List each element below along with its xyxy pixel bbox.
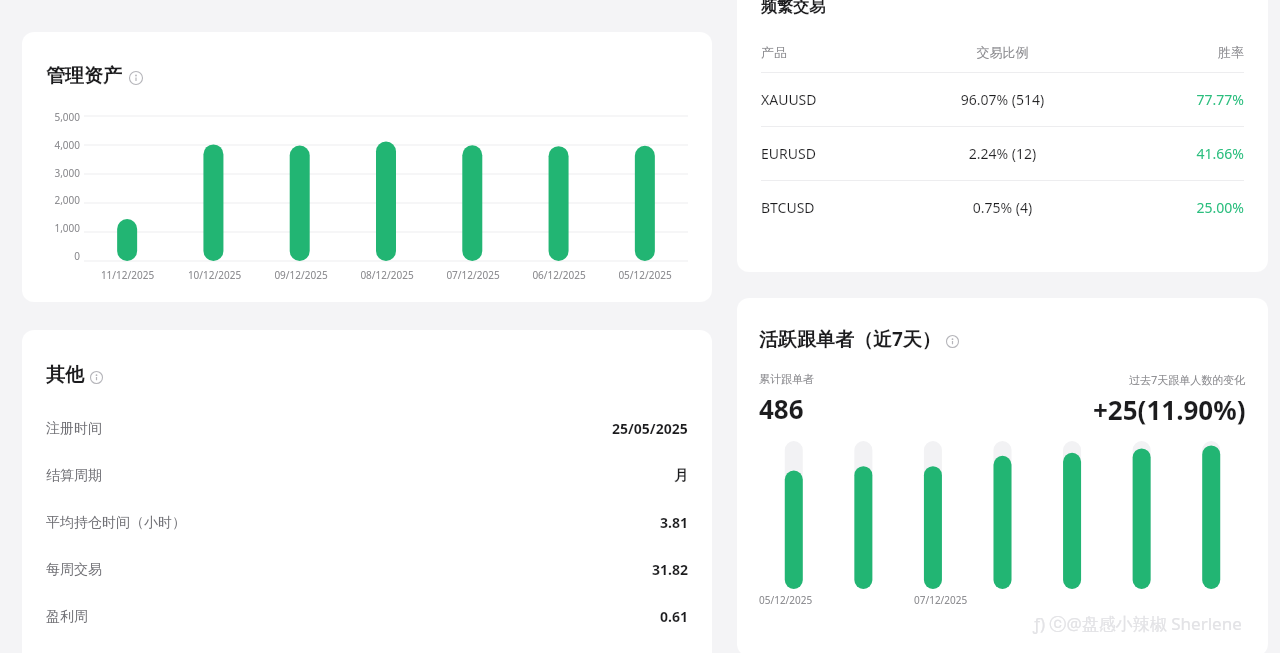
button[interactable]: Info [946, 335, 959, 348]
staticText: 结算周期 [46, 467, 102, 485]
staticText: 3,000 [34, 166, 80, 180]
staticText: 05/12/2025 [759, 593, 813, 607]
staticText: 2,000 [34, 193, 80, 207]
button[interactable]: BTCUSD [761, 181, 1244, 234]
button[interactable]: Info [90, 371, 103, 384]
staticText: 25/05/2025 [612, 419, 688, 438]
staticText: 产品 [761, 44, 922, 60]
staticText: 月 [674, 467, 688, 485]
staticText: 41.66% [1083, 144, 1244, 163]
staticText: 累计跟单者 [759, 372, 814, 386]
button[interactable]: Info [129, 71, 143, 85]
staticText: 31.82 [652, 560, 688, 579]
staticText: 活跃跟单者（近7天） [759, 326, 941, 352]
staticText: 07/12/2025 [914, 593, 968, 607]
staticText: 3.81 [660, 513, 688, 532]
staticText: 25.00% [1083, 198, 1244, 217]
staticText: 交易比例 [922, 44, 1083, 60]
staticText: 09/12/2025 [258, 268, 344, 282]
button[interactable]: XAUUSD [761, 73, 1244, 126]
staticText: 06/12/2025 [516, 268, 602, 282]
staticText: 过去7天跟单人数的变化 [1129, 372, 1246, 387]
staticText: 2.24% (12) [922, 144, 1083, 163]
staticText: 0.61 [660, 607, 688, 626]
staticText: 1,000 [34, 221, 80, 235]
button[interactable]: 盈利周 [46, 593, 688, 640]
staticText: 05/12/2025 [602, 268, 688, 282]
staticText: 08/12/2025 [344, 268, 430, 282]
staticText: 0 [34, 249, 80, 263]
staticText: 5,000 [34, 110, 80, 124]
staticText: XAUUSD [761, 90, 922, 109]
button[interactable]: 注册时间 [46, 405, 688, 452]
staticText: 486 [759, 391, 804, 426]
button[interactable]: EURUSD [761, 127, 1244, 180]
button[interactable]: 频繁交易 [761, 0, 825, 17]
button[interactable]: 每周交易 [46, 546, 688, 593]
staticText: 盈利周 [46, 608, 88, 626]
staticText: 0.75% (4) [922, 198, 1083, 217]
staticText: ƒ) ⓒ@盘感小辣椒 Sherlene [1033, 612, 1242, 635]
staticText: 胜率 [1083, 44, 1244, 60]
button[interactable]: 其他 [46, 363, 103, 387]
staticText: 07/12/2025 [430, 268, 516, 282]
staticText: 11/12/2025 [84, 268, 171, 282]
staticText: 每周交易 [46, 561, 102, 579]
staticText: BTCUSD [761, 198, 922, 217]
button[interactable]: 平均持仓时间（小时） [46, 499, 688, 546]
staticText: EURUSD [761, 144, 922, 163]
staticText: +25(11.90%) [1093, 392, 1246, 427]
staticText: 4,000 [34, 138, 80, 152]
button[interactable]: 活跃跟单者（近7天） [759, 326, 959, 352]
staticText: 注册时间 [46, 420, 102, 438]
staticText: 96.07% (514) [922, 90, 1083, 109]
staticText: 平均持仓时间（小时） [46, 514, 186, 532]
staticText: 其他 [46, 363, 84, 387]
staticText: 77.77% [1083, 90, 1244, 109]
button[interactable]: 结算周期 [46, 452, 688, 499]
staticText: 10/12/2025 [171, 268, 258, 282]
staticText: 管理资产 [46, 64, 122, 88]
button[interactable]: 管理资产 [46, 64, 143, 88]
